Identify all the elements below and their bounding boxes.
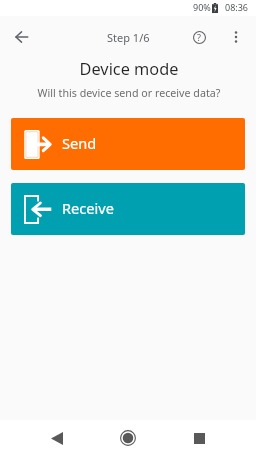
staticText: ?: [197, 31, 201, 43]
button[interactable]: Receive: [11, 183, 245, 235]
button[interactable]: Help: [183, 21, 215, 53]
button[interactable]: Back: [41, 422, 73, 454]
staticText: Send: [62, 133, 97, 153]
button[interactable]: Send: [11, 118, 245, 170]
button[interactable]: More options: [220, 21, 252, 53]
staticText: Will this device send or receive data?: [1, 86, 256, 101]
staticText: Receive: [62, 198, 114, 218]
staticText: Step 1/6: [107, 30, 150, 45]
button[interactable]: Home: [112, 422, 144, 454]
staticText: Device mode: [1, 58, 256, 80]
staticText: 08:36: [225, 1, 249, 13]
button[interactable]: Recent apps: [183, 422, 215, 454]
button[interactable]: Back: [5, 21, 37, 53]
staticText: 90%: [193, 1, 211, 13]
